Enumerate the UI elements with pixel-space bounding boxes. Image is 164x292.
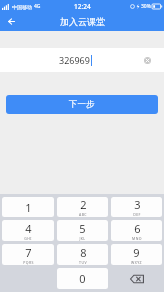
staticText: 9: [133, 245, 140, 260]
staticText: MNO: [132, 236, 142, 241]
staticText: PQRS: [23, 260, 34, 265]
button[interactable]: 326969: [0, 48, 164, 72]
button[interactable]: 下一步: [6, 95, 158, 114]
staticText: 30%: [141, 3, 151, 10]
staticText: 7: [25, 245, 32, 260]
button[interactable]: 4: [2, 220, 54, 241]
staticText: 4: [25, 221, 32, 236]
staticText: 3: [134, 197, 141, 212]
button[interactable]: Clear: [140, 53, 154, 67]
staticText: 8: [80, 245, 87, 260]
staticText: 12:24: [74, 2, 91, 11]
staticText: 6: [134, 221, 141, 236]
button[interactable]: 5: [57, 220, 108, 241]
staticText: 5: [79, 221, 86, 236]
staticText: 326969: [59, 54, 90, 66]
button[interactable]: 3: [111, 197, 162, 217]
button[interactable]: 9: [111, 244, 162, 265]
button[interactable]: 0: [57, 268, 108, 289]
staticText: 4G: [34, 3, 41, 10]
button[interactable]: Backspace: [111, 268, 162, 289]
staticText: 1: [25, 200, 32, 215]
staticText: JKL: [79, 236, 86, 241]
staticText: 加入云课堂: [60, 16, 105, 27]
staticText: 0: [79, 271, 86, 286]
staticText: DEF: [133, 212, 141, 217]
button[interactable]: 2: [57, 197, 108, 217]
button[interactable]: 6: [111, 220, 162, 241]
staticText: 下一步: [69, 99, 95, 110]
staticText: GHI: [24, 236, 32, 241]
staticText: 2: [80, 197, 87, 212]
staticText: WXYZ: [131, 260, 142, 265]
staticText: 中国移动: [12, 4, 32, 10]
button[interactable]: Back: [0, 12, 20, 31]
button[interactable]: 8: [57, 244, 108, 265]
staticText: ABC: [79, 212, 87, 217]
button[interactable]: 1: [2, 197, 54, 217]
button[interactable]: 7: [2, 244, 54, 265]
staticText: TUV: [79, 260, 87, 265]
